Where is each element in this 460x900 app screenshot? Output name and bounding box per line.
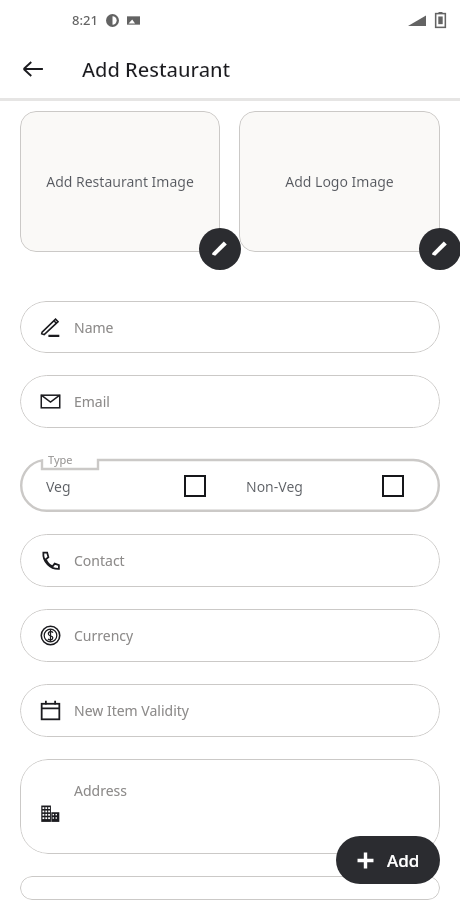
staticText: Contact: [74, 551, 125, 570]
button[interactable]: Contact: [20, 534, 440, 587]
button[interactable]: Toggle: [182, 473, 208, 499]
staticText: Add: [387, 849, 420, 872]
button[interactable]: Back: [14, 50, 52, 88]
staticText: Name: [74, 318, 114, 337]
staticText: Email: [74, 392, 110, 411]
staticText: Address: [74, 781, 127, 800]
staticText: Add Restaurant Image: [46, 172, 194, 191]
button[interactable]: Edit Add Logo Image: [419, 228, 460, 270]
button[interactable]: Add Logo Image: [239, 111, 440, 252]
staticText: New Item Validity: [74, 701, 189, 720]
button[interactable]: Edit Add Restaurant Image: [199, 228, 241, 270]
button[interactable]: Email: [20, 375, 440, 428]
button[interactable]: Address: [20, 759, 440, 854]
staticText: Veg: [46, 477, 71, 496]
staticText: 8:21: [72, 11, 98, 29]
button[interactable]: New Item Validity: [20, 684, 440, 737]
button[interactable]: Add: [336, 836, 440, 884]
button[interactable]: Currency: [20, 609, 440, 662]
staticText: Non-Veg: [246, 477, 303, 496]
staticText: Add Restaurant: [82, 56, 231, 83]
staticText: Description: [74, 898, 150, 900]
staticText: Add Logo Image: [285, 172, 394, 191]
button[interactable]: Add Restaurant Image: [20, 111, 220, 252]
button[interactable]: Name: [20, 301, 440, 353]
staticText: Type: [48, 452, 73, 467]
staticText: Currency: [74, 626, 134, 645]
button[interactable]: Toggle: [380, 473, 406, 499]
button[interactable]: Description: [20, 876, 440, 900]
